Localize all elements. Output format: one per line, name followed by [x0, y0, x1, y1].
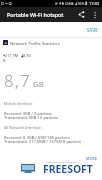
- staticText: All Network Interface:: [4, 125, 42, 130]
- staticText: Network Traffic Statistics: [10, 40, 60, 46]
- staticText: Portable Wi-Fi hotspot: [7, 11, 64, 18]
- staticText: Received: 8,3GB / 6981186 packets: [4, 135, 70, 140]
- staticText: Mobile Interface:: [4, 101, 34, 106]
- staticText: MORE: [86, 156, 98, 161]
- button[interactable]: Каталог бесплатных программ: [0, 161, 102, 180]
- staticText: Каталог бесплатных программ: [46, 161, 76, 164]
- staticText: B: [3, 58, 6, 63]
- staticText: 8,7: [4, 69, 32, 91]
- button[interactable]: SAVE: [84, 24, 100, 36]
- staticText: SAVE: [87, 27, 98, 33]
- staticText: 8,3G: [23, 53, 32, 58]
- staticText: Received: 0KB / 0 packets: [4, 111, 52, 116]
- staticText: Transmitted: 317,0MB / 1675818 packets: [4, 139, 81, 144]
- staticText: 217,9M: [5, 53, 19, 58]
- staticText: 17:32: [89, 1, 99, 6]
- staticText: FREESOFT: [43, 162, 93, 176]
- staticText: Transmitted: 0KB / 0 packets: [4, 115, 58, 120]
- button[interactable]: Share: [76, 7, 87, 22]
- button[interactable]: MORE: [83, 154, 101, 163]
- staticText: 90%: [78, 2, 85, 6]
- staticText: GB: [33, 79, 44, 90]
- button[interactable]: More options: [89, 7, 100, 22]
